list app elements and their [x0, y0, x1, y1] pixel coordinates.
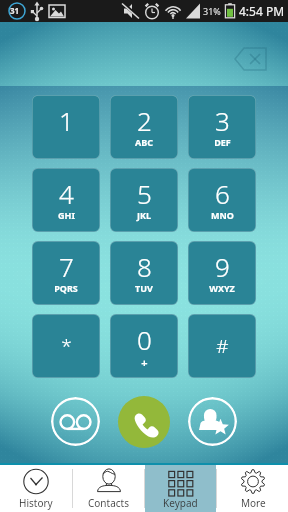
button[interactable]: History: [0, 465, 72, 512]
staticText: #: [216, 333, 229, 359]
button[interactable]: Voicemail: [51, 397, 100, 446]
staticText: DEF: [214, 136, 231, 148]
staticText: 5: [137, 176, 152, 211]
button[interactable]: 7: [32, 241, 100, 305]
staticText: JKL: [137, 209, 151, 221]
staticText: MNO: [211, 209, 234, 221]
staticText: 9: [215, 249, 230, 284]
staticText: 0: [137, 322, 152, 357]
staticText: 31%: [203, 5, 221, 17]
staticText: 4:54 PM: [239, 3, 285, 19]
button[interactable]: 4: [32, 168, 100, 232]
staticText: GHI: [58, 209, 75, 221]
staticText: TUV: [135, 282, 153, 294]
button[interactable]: 5: [110, 168, 178, 232]
button[interactable]: Keypad: [145, 465, 216, 512]
staticText: 8: [137, 249, 152, 284]
staticText: 6: [215, 176, 230, 211]
staticText: 1: [59, 103, 74, 138]
staticText: 4: [59, 176, 74, 211]
staticText: PQRS: [54, 282, 78, 294]
staticText: *: [61, 333, 72, 359]
staticText: 2: [137, 103, 152, 138]
staticText: +: [141, 355, 148, 370]
button[interactable]: Call: [118, 396, 170, 448]
button[interactable]: 2: [110, 95, 178, 159]
staticText: 3: [215, 103, 230, 138]
staticText: 7: [59, 249, 74, 284]
button[interactable]: Backspace: [232, 43, 274, 75]
staticText: 31: [10, 5, 20, 16]
staticText: WXYZ: [209, 282, 235, 294]
button[interactable]: 9: [188, 241, 256, 305]
button[interactable]: 3: [188, 95, 256, 159]
button[interactable]: Favourite contacts: [188, 397, 237, 446]
staticText: ABC: [135, 136, 153, 148]
button[interactable]: More: [217, 465, 288, 512]
button[interactable]: 0: [110, 314, 178, 378]
button[interactable]: Contacts: [73, 465, 144, 512]
button[interactable]: 8: [110, 241, 178, 305]
staticText: More: [241, 496, 266, 510]
button[interactable]: #: [188, 314, 256, 378]
button[interactable]: 1: [32, 95, 100, 159]
staticText: Keypad: [163, 496, 198, 510]
staticText: Contacts: [88, 496, 129, 510]
button[interactable]: 6: [188, 168, 256, 232]
staticText: History: [19, 496, 53, 510]
button[interactable]: *: [32, 314, 100, 378]
